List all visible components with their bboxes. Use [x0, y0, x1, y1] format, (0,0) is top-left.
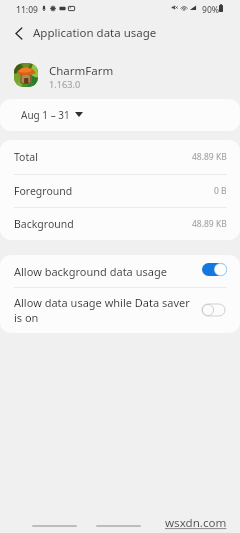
- staticText: Allow data usage while Data saver: [14, 295, 190, 310]
- staticText: CharmFarm: [49, 63, 114, 79]
- button[interactable]: Foreground: [0, 174, 240, 208]
- staticText: 48.89 KB: [192, 151, 227, 163]
- button[interactable]: Allow data usage while Data saver: [0, 287, 240, 333]
- staticText: 48.89 KB: [192, 218, 227, 230]
- staticText: Total: [14, 150, 38, 164]
- button[interactable]: Total: [0, 140, 240, 174]
- staticText: 11:09: [16, 4, 39, 16]
- staticText: 1.163.0: [49, 78, 81, 91]
- staticText: Allow background data usage: [14, 264, 167, 279]
- staticText: is on: [14, 310, 39, 325]
- button[interactable]: Navigate up: [7, 21, 31, 45]
- staticText: Aug 1 – 31: [21, 108, 70, 122]
- staticText: Foreground: [14, 184, 73, 198]
- staticText: Application data usage: [33, 25, 157, 41]
- staticText: 0 B: [214, 185, 227, 197]
- button[interactable]: Allow background data usage: [0, 255, 240, 287]
- button[interactable]: Aug 1 – 31: [0, 99, 240, 131]
- button[interactable]: Background: [0, 207, 240, 240]
- staticText: wsxdn.com: [165, 515, 227, 531]
- staticText: Background: [14, 217, 74, 231]
- staticText: 90%: [202, 4, 220, 16]
